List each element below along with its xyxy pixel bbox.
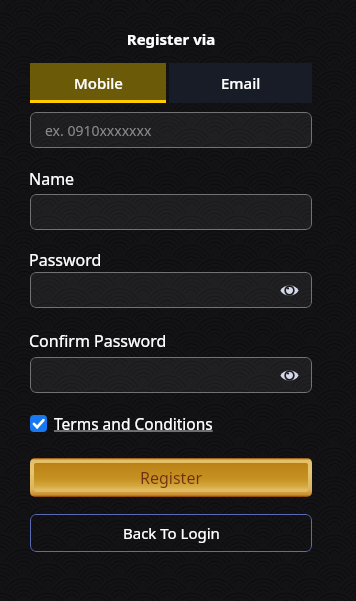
button[interactable]: Back To Login: [30, 514, 312, 552]
staticText: Password: [29, 249, 102, 271]
button[interactable]: Show password: [30, 272, 312, 308]
staticText: ex. 0910xxxxxxx: [45, 121, 152, 140]
button[interactable]: Accept Terms and Conditions: [30, 415, 47, 432]
staticText: Name: [29, 168, 75, 190]
staticText: Email: [221, 73, 261, 93]
staticText: Mobile: [74, 73, 123, 93]
button[interactable]: Show password: [280, 369, 299, 382]
button[interactable]: Register: [34, 463, 308, 492]
button[interactable]: Terms and Conditions: [54, 413, 213, 434]
button[interactable]: Email: [169, 63, 312, 103]
button[interactable]: Show password: [280, 284, 299, 297]
button[interactable]: [30, 194, 312, 230]
staticText: Register: [140, 467, 203, 489]
button[interactable]: ex. 0910xxxxxxx: [30, 112, 312, 148]
button[interactable]: Mobile: [30, 63, 166, 103]
staticText: Register via: [30, 29, 312, 49]
button[interactable]: Show password: [30, 357, 312, 393]
staticText: Back To Login: [123, 523, 220, 543]
staticText: Confirm Password: [29, 330, 167, 352]
